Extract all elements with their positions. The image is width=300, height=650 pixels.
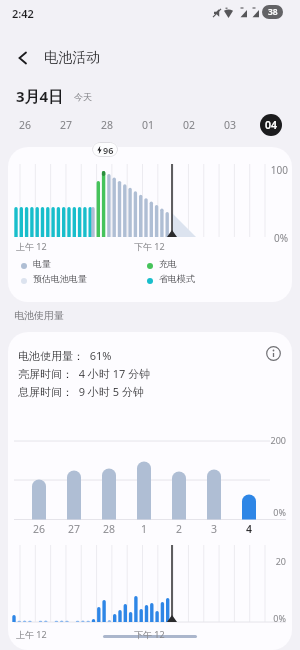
staticText: 上午 12	[16, 628, 47, 640]
staticText: 03	[224, 118, 237, 132]
staticText: 04	[265, 118, 278, 132]
staticText: 电池使用量： 61%	[18, 348, 112, 363]
staticText: 28	[101, 118, 114, 132]
staticText: 26	[33, 522, 46, 536]
button[interactable]: 27	[55, 114, 77, 136]
button[interactable]	[266, 346, 281, 361]
staticText: 预估电池电量	[33, 273, 87, 284]
staticText: 3	[211, 522, 218, 536]
staticText: 1	[141, 522, 148, 536]
staticText: 0%	[248, 231, 288, 245]
button[interactable]: 01	[137, 114, 159, 136]
staticText: 充电	[159, 258, 177, 269]
staticText: 4	[246, 522, 253, 536]
staticText: 26	[19, 118, 32, 132]
staticText: 27	[68, 522, 81, 536]
staticText: 0%	[246, 612, 286, 624]
staticText: 200	[246, 434, 286, 446]
staticText: 3月4日	[16, 86, 64, 106]
staticText: 电池活动	[44, 49, 100, 67]
staticText: 亮屏时间： 4 小时 17 分钟	[18, 366, 151, 381]
staticText: 今天	[74, 91, 92, 102]
staticText: 38	[268, 6, 278, 18]
button[interactable]: 04	[260, 114, 282, 136]
staticText: 28	[103, 522, 116, 536]
button[interactable]: 03	[219, 114, 241, 136]
button[interactable]: 28	[96, 114, 118, 136]
staticText: 27	[60, 118, 73, 132]
staticText: 100	[248, 163, 288, 177]
button[interactable]: 26	[14, 114, 36, 136]
staticText: 0%	[246, 506, 286, 518]
staticText: 电池使用量	[14, 309, 64, 322]
staticText: 电量	[33, 258, 51, 269]
button[interactable]: 02	[178, 114, 200, 136]
button[interactable]	[16, 51, 30, 65]
staticText: 96	[103, 144, 114, 156]
staticText: 上午 12	[16, 240, 47, 252]
staticText: 02	[183, 118, 196, 132]
staticText: 2:42	[12, 6, 34, 21]
staticText: 20	[246, 555, 286, 567]
staticText: 2	[176, 522, 183, 536]
staticText: 下午 12	[134, 240, 165, 252]
staticText: 省电模式	[159, 273, 195, 284]
staticText: 01	[142, 118, 155, 132]
staticText: 息屏时间： 9 小时 5 分钟	[18, 384, 144, 399]
staticText: 下午 12	[134, 628, 165, 640]
